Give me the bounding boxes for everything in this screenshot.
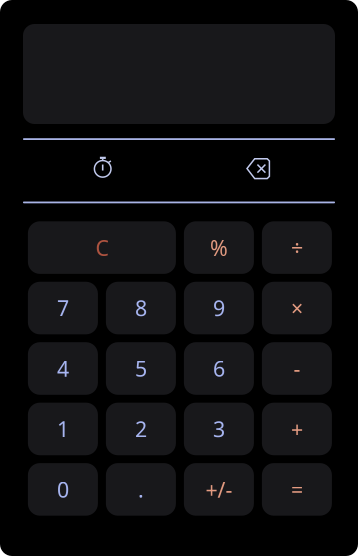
button[interactable]: .: [106, 463, 176, 516]
staticText: 1: [57, 415, 69, 443]
staticText: =: [291, 475, 303, 503]
staticText: 4: [57, 354, 69, 383]
staticText: +: [291, 415, 303, 443]
staticText: C: [95, 233, 108, 262]
button[interactable]: 0: [28, 463, 98, 516]
staticText: .: [138, 475, 144, 503]
staticText: 5: [135, 354, 147, 383]
button[interactable]: =: [262, 463, 332, 516]
staticText: +/-: [205, 475, 232, 503]
staticText: %: [210, 233, 228, 262]
button[interactable]: Timer: [23, 140, 179, 201]
button[interactable]: Delete: [179, 140, 335, 201]
staticText: 7: [57, 294, 69, 322]
button[interactable]: ÷: [262, 221, 332, 274]
button[interactable]: -: [262, 342, 332, 395]
staticText: 3: [213, 415, 225, 443]
button[interactable]: +: [262, 403, 332, 455]
staticText: ×: [291, 294, 303, 322]
button[interactable]: 3: [184, 403, 254, 455]
staticText: 2: [135, 415, 147, 443]
button[interactable]: 6: [184, 342, 254, 395]
button[interactable]: 1: [28, 403, 98, 455]
button[interactable]: 8: [106, 282, 176, 334]
staticText: 8: [135, 294, 147, 322]
staticText: 6: [213, 354, 225, 383]
staticText: 0: [57, 475, 69, 503]
button[interactable]: ×: [262, 282, 332, 334]
button[interactable]: 5: [106, 342, 176, 395]
button[interactable]: 4: [28, 342, 98, 395]
staticText: ÷: [291, 233, 303, 262]
button[interactable]: +/-: [184, 463, 254, 516]
staticText: -: [293, 354, 300, 383]
staticText: 9: [213, 294, 225, 322]
button[interactable]: 9: [184, 282, 254, 334]
button[interactable]: 7: [28, 282, 98, 334]
button[interactable]: 2: [106, 403, 176, 455]
button[interactable]: C: [28, 221, 176, 274]
button[interactable]: %: [184, 221, 254, 274]
